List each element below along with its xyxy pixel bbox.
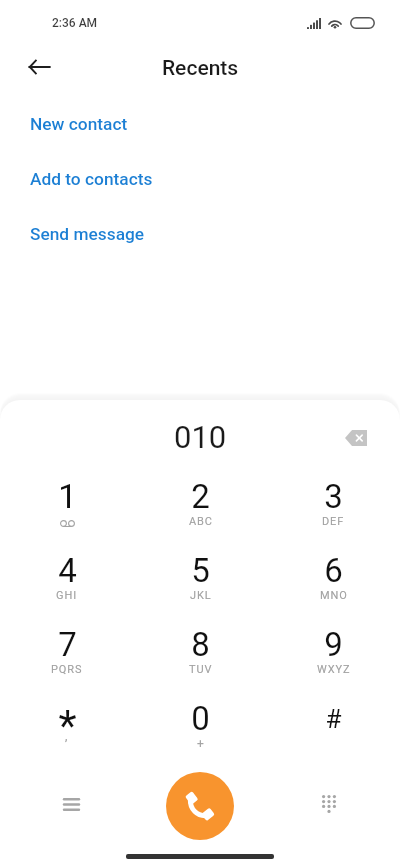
staticText: 6 [324, 551, 343, 590]
staticText: * [58, 701, 77, 750]
staticText: TUV [189, 663, 213, 676]
staticText: Recents [162, 56, 239, 81]
button[interactable]: 8 [134, 614, 267, 688]
button[interactable]: Back [20, 47, 60, 87]
button[interactable]: Add to contacts [0, 151, 400, 206]
staticText: 8 [191, 625, 210, 664]
staticText: 9 [324, 625, 343, 664]
button[interactable]: Call history [52, 785, 90, 823]
button[interactable]: New contact [0, 96, 400, 151]
button[interactable]: # [267, 688, 400, 762]
button[interactable]: 0 [134, 688, 267, 762]
staticText: 0 [191, 699, 210, 738]
button[interactable]: Call [166, 772, 234, 840]
button[interactable]: 3 [267, 466, 400, 540]
button[interactable]: 4 [0, 540, 134, 614]
staticText: 010 [174, 419, 227, 455]
staticText: 2 [191, 477, 210, 516]
staticText: Send message [30, 224, 145, 244]
staticText: 7 [58, 625, 77, 664]
staticText: DEF [322, 515, 345, 528]
button[interactable]: 2 [134, 466, 267, 540]
staticText: Add to contacts [30, 169, 153, 189]
button[interactable]: 9 [267, 614, 400, 688]
staticText: 3 [324, 477, 343, 516]
staticText: WXYZ [317, 663, 351, 676]
staticText: GHI [56, 589, 78, 602]
staticText: + [197, 737, 205, 751]
staticText: # [325, 704, 342, 734]
staticText: MNO [320, 589, 348, 602]
button[interactable]: 1 [0, 466, 134, 540]
staticText: , [65, 729, 69, 743]
staticText: 5 [191, 551, 210, 590]
button[interactable]: Send message [0, 206, 400, 261]
button[interactable]: Dialpad [310, 785, 348, 823]
staticText: New contact [30, 114, 128, 134]
button[interactable]: 6 [267, 540, 400, 614]
button[interactable]: * [0, 688, 134, 762]
button[interactable]: 5 [134, 540, 267, 614]
staticText: JKL [190, 589, 212, 602]
staticText: PQRS [51, 663, 83, 676]
button[interactable]: 7 [0, 614, 134, 688]
staticText: 4 [58, 551, 77, 590]
staticText: 1 [58, 477, 77, 516]
staticText: 2:36 AM [52, 16, 98, 30]
staticText: ABC [189, 515, 213, 528]
button[interactable]: Backspace [336, 418, 376, 458]
